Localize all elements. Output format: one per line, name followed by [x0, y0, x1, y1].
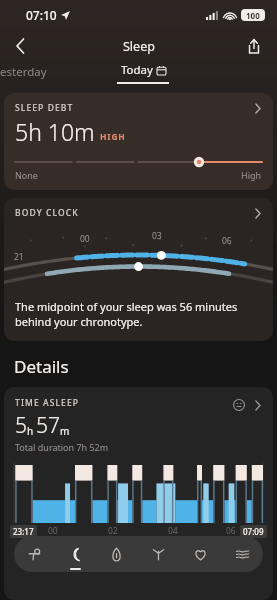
staticText: The midpoint of your sleep was 56 minute…: [15, 299, 259, 329]
button[interactable]: Today: [117, 62, 169, 84]
button[interactable]: Trends: [221, 536, 263, 572]
staticText: 07:09: [243, 526, 264, 537]
staticText: BODY CLOCK: [15, 207, 79, 219]
button[interactable]: Sleep: [55, 536, 96, 572]
button[interactable]: Heart: [179, 536, 221, 572]
staticText: 04: [168, 525, 178, 537]
button[interactable]: Energy: [96, 536, 137, 572]
staticText: 00: [80, 233, 90, 245]
button[interactable]: TIME ASLEEP: [4, 387, 273, 453]
button[interactable]: Share: [239, 31, 269, 61]
button[interactable]: Back: [6, 31, 36, 61]
button[interactable]: Body: [137, 536, 179, 572]
staticText: Details: [14, 355, 69, 378]
staticText: 21: [14, 251, 24, 263]
staticText: TIME ASLEEP: [15, 397, 80, 409]
staticText: 57: [36, 411, 60, 440]
button[interactable]: Activity: [14, 536, 55, 572]
staticText: 5: [15, 411, 27, 440]
staticText: 100: [246, 10, 260, 21]
button[interactable]: SLEEP DEBT: [4, 93, 273, 190]
staticText: SLEEP DEBT: [15, 102, 74, 114]
staticText: h: [27, 424, 34, 438]
staticText: 23:17: [13, 526, 34, 537]
staticText: 02: [108, 525, 118, 537]
staticText: Total duration 7h 52m: [15, 441, 109, 453]
staticText: Today: [121, 62, 153, 78]
button[interactable]: BODY CLOCK: [4, 198, 273, 341]
staticText: Sleep: [123, 38, 155, 55]
staticText: MOVEMENT: [4, 545, 273, 556]
staticText: High: [241, 169, 262, 181]
staticText: m: [60, 424, 70, 438]
button[interactable]: esterday: [0, 64, 47, 80]
staticText: None: [15, 169, 38, 181]
other: Mood: [233, 399, 245, 411]
staticText: 07:10: [26, 7, 57, 23]
staticText: 03: [152, 230, 162, 242]
staticText: 06: [222, 235, 232, 247]
staticText: HIGH: [100, 131, 126, 143]
staticText: 06: [226, 525, 236, 537]
staticText: 5h 10m: [15, 116, 95, 147]
staticText: 00: [48, 525, 58, 537]
